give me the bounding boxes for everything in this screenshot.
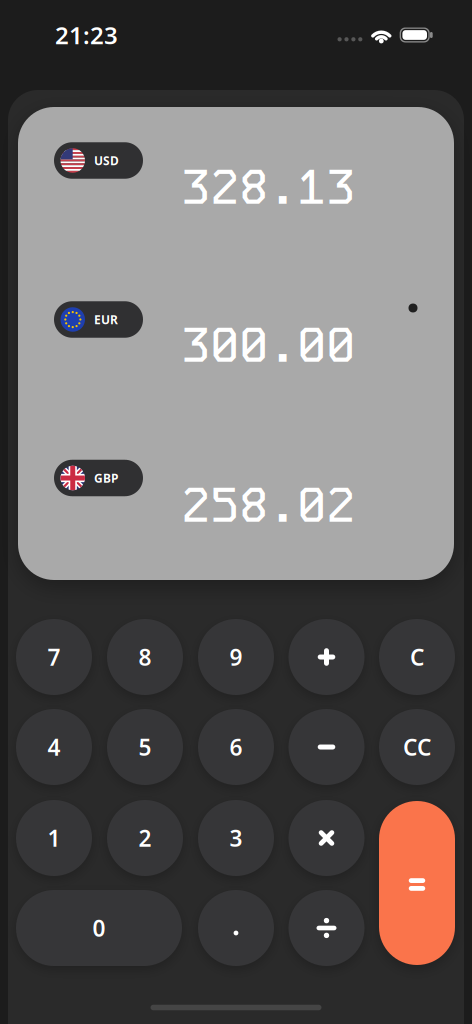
staticText: 3 (229, 823, 242, 853)
staticText: 328.13 (181, 156, 355, 218)
button[interactable]: Decimal point (198, 890, 274, 966)
staticText: USD (94, 152, 119, 168)
button[interactable]: Multiply (288, 800, 364, 876)
button[interactable]: CC (379, 709, 455, 785)
staticText: 6 (229, 732, 242, 762)
button[interactable]: 8 (107, 619, 183, 695)
button[interactable]: Add (288, 619, 364, 695)
button[interactable]: Divide (288, 890, 364, 966)
button[interactable]: 9 (198, 619, 274, 695)
staticText: C (410, 642, 424, 672)
button[interactable]: Subtract (288, 709, 364, 785)
staticText: GBP (94, 470, 118, 486)
button[interactable]: GBP (54, 460, 143, 496)
staticText: 2 (138, 823, 151, 853)
button[interactable]: Equals (379, 801, 455, 965)
button[interactable]: 5 (107, 709, 183, 785)
staticText: 5 (138, 732, 151, 762)
button[interactable]: 4 (16, 709, 92, 785)
button[interactable]: USD (54, 142, 143, 179)
staticText: 21:23 (55, 19, 118, 51)
button[interactable]: 7 (16, 619, 92, 695)
button[interactable]: 2 (107, 800, 183, 876)
button[interactable]: EUR (54, 301, 143, 338)
button[interactable]: 0 (16, 890, 182, 966)
staticText: 1 (47, 823, 60, 853)
staticText: 4 (47, 732, 60, 762)
button[interactable]: 6 (198, 709, 274, 785)
staticText: 9 (229, 642, 242, 672)
staticText: 8 (138, 642, 151, 672)
button[interactable]: C (379, 619, 455, 695)
staticText: EUR (94, 311, 118, 327)
staticText: 300.00 (181, 314, 355, 376)
staticText: 7 (47, 642, 60, 672)
button[interactable]: 3 (198, 800, 274, 876)
button[interactable]: 1 (16, 800, 92, 876)
staticText: CC (403, 732, 431, 762)
staticText: 0 (92, 913, 105, 943)
staticText: 258.02 (181, 474, 355, 536)
